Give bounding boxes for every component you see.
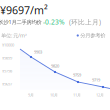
staticText: 9719 (92, 77, 100, 83)
staticText: -0.23% (43, 18, 65, 26)
staticText: 单位: 元/m² (1, 32, 27, 39)
staticText: 11月 (73, 92, 81, 98)
staticText: 9903 (34, 49, 42, 55)
staticText: 分月参考价 (80, 32, 105, 39)
staticText: ¥9899 (2, 55, 12, 61)
staticText: 9820 (51, 63, 59, 69)
staticText: ¥10000 (2, 42, 14, 48)
staticText: ¥9798 (2, 68, 12, 74)
staticText: 9月 (28, 92, 34, 98)
staticText: (环比上月) (69, 18, 101, 26)
staticText: 长沙1月二手房均价 (0, 18, 41, 26)
staticText: 10月 (50, 92, 58, 98)
staticText: ¥9697 (2, 81, 12, 87)
staticText: 9759 (73, 72, 81, 78)
staticText: 12月 (96, 92, 104, 98)
staticText: ¥9697/m² (0, 3, 48, 17)
